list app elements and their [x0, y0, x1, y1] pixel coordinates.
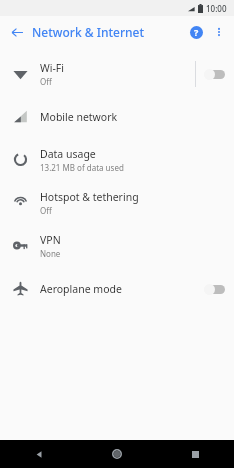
staticText: Hotspot & tethering	[40, 190, 139, 204]
button[interactable]: Back	[6, 21, 28, 43]
button[interactable]: Aeroplane mode toggle	[196, 267, 234, 310]
staticText: Network & Internet	[32, 24, 145, 40]
staticText: Wi-Fi	[40, 61, 65, 75]
button[interactable]: Back	[0, 440, 78, 468]
button[interactable]: Home	[78, 440, 156, 468]
staticText: None	[40, 248, 61, 259]
button[interactable]: Data usage	[0, 138, 234, 181]
button[interactable]: Wi-Fi toggle	[196, 52, 234, 95]
staticText: Off	[40, 76, 52, 87]
button[interactable]: Wi-Fi	[0, 52, 234, 95]
staticText: 10:00	[206, 3, 227, 14]
button[interactable]: Aeroplane mode	[0, 267, 234, 310]
staticText: 13.21 MB of data used	[40, 162, 124, 173]
button[interactable]: Recent apps	[156, 440, 234, 468]
button[interactable]: Help	[184, 20, 208, 44]
staticText: Mobile network	[40, 110, 118, 124]
button[interactable]: VPN	[0, 224, 234, 267]
staticText: ?	[194, 26, 199, 38]
staticText: VPN	[40, 233, 61, 247]
button[interactable]: More options	[208, 21, 230, 43]
staticText: Aeroplane mode	[40, 282, 122, 296]
staticText: Data usage	[40, 147, 96, 161]
staticText: Off	[40, 205, 52, 216]
button[interactable]: Mobile network	[0, 95, 234, 138]
button[interactable]: Hotspot & tethering	[0, 181, 234, 224]
